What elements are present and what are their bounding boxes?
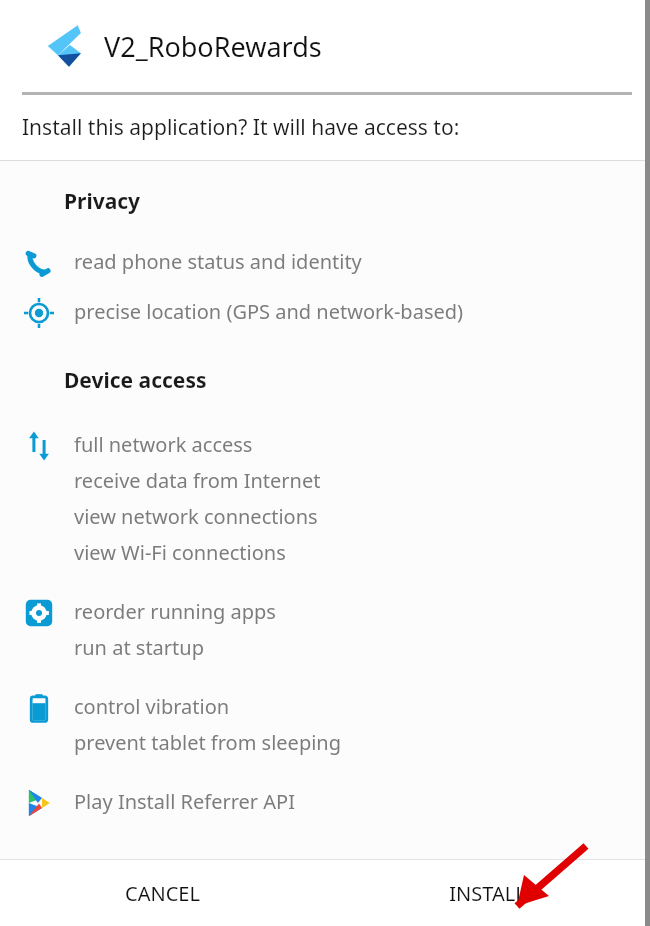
staticText: INSTALL	[449, 880, 526, 907]
staticText: Install this application? It will have a…	[22, 113, 460, 142]
staticText: full network access	[74, 431, 253, 458]
other: Network permission	[24, 431, 54, 461]
staticText: Device access	[64, 366, 207, 395]
other: System settings permission	[24, 598, 54, 628]
other: Device power permission	[24, 693, 54, 723]
other: Play services permission	[24, 788, 54, 818]
staticText: run at startup	[74, 634, 204, 661]
staticText: CANCEL	[125, 880, 200, 907]
staticText: Privacy	[64, 187, 141, 216]
button[interactable]: INSTALL	[325, 860, 650, 926]
staticText: receive data from Internet	[74, 467, 321, 494]
staticText: control vibration	[74, 693, 230, 720]
staticText: prevent tablet from sleeping	[74, 729, 342, 756]
staticText: precise location (GPS and network-based)	[74, 298, 464, 325]
staticText: view Wi-Fi connections	[74, 539, 286, 566]
staticText: read phone status and identity	[74, 248, 362, 275]
button[interactable]: CANCEL	[0, 860, 325, 926]
other: Phone permission	[24, 248, 54, 278]
staticText: reorder running apps	[74, 598, 276, 625]
staticText: Play Install Referrer API	[74, 788, 295, 815]
other: Location permission	[24, 298, 54, 328]
staticText: V2_RoboRewards	[104, 28, 322, 65]
staticText: view network connections	[74, 503, 318, 530]
